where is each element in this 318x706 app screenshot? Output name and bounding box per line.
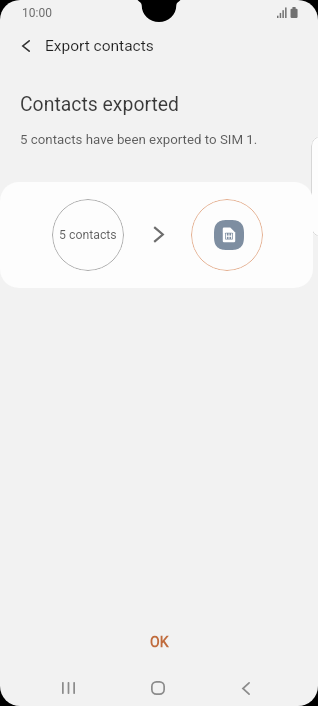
staticText: 5 contacts have been exported to SIM 1.: [20, 132, 258, 148]
button[interactable]: Home: [134, 670, 182, 706]
button[interactable]: Navigate up: [11, 32, 41, 60]
button[interactable]: OK: [0, 629, 318, 655]
staticText: OK: [150, 634, 169, 650]
staticText: Contacts exported: [20, 93, 180, 116]
button[interactable]: [0, 182, 313, 288]
staticText: 5 contacts: [59, 228, 117, 242]
button[interactable]: 5 contacts: [52, 199, 124, 271]
staticText: 10:00: [22, 6, 52, 20]
button[interactable]: [191, 199, 263, 271]
button[interactable]: Back: [222, 670, 270, 706]
staticText: Export contacts: [45, 37, 154, 55]
button[interactable]: Recent apps: [44, 670, 92, 706]
